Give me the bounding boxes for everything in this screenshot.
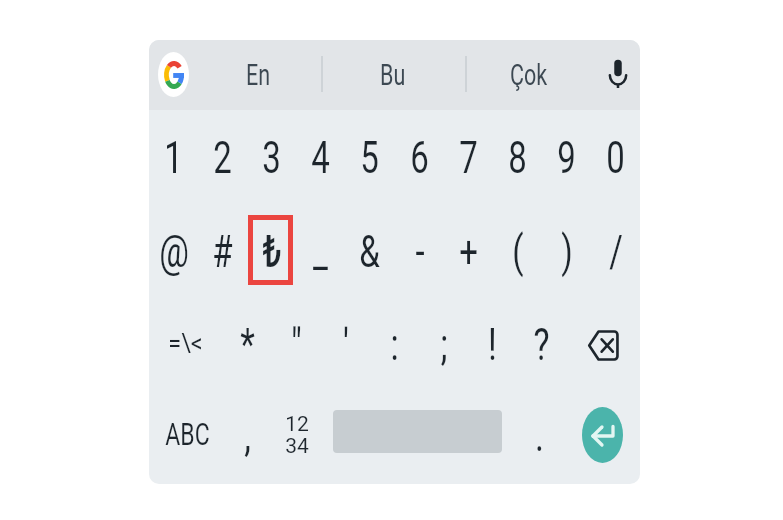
button[interactable]: * [223, 309, 272, 379]
staticText: , [244, 408, 251, 462]
staticText: En [246, 59, 271, 92]
staticText: 8 [508, 132, 527, 183]
staticText: 0 [606, 132, 625, 183]
button[interactable]: 9 [542, 122, 591, 192]
staticText: / [609, 226, 623, 277]
staticText: ! [488, 317, 497, 371]
staticText: 3 [262, 132, 281, 183]
button[interactable]: ( [493, 216, 542, 286]
staticText: Bu [380, 59, 406, 92]
button[interactable]: Google [158, 52, 189, 97]
button[interactable]: ? [517, 309, 566, 379]
button[interactable]: Bu [348, 52, 438, 98]
button[interactable]: , [223, 400, 272, 470]
button[interactable]: 0 [591, 122, 640, 192]
staticText: + [459, 226, 478, 277]
staticText: 2 [213, 132, 232, 183]
staticText: ) [561, 226, 573, 277]
staticText: - [415, 226, 425, 277]
staticText: ( [512, 226, 524, 277]
staticText: 12 34 [285, 412, 309, 458]
button[interactable]: 2 [198, 122, 247, 192]
staticText: 4 [311, 132, 330, 183]
staticText: ' [343, 317, 349, 371]
button[interactable]: ! [468, 309, 517, 379]
button[interactable]: 8 [493, 122, 542, 192]
button[interactable]: " [272, 309, 321, 379]
button[interactable]: ' [321, 309, 370, 379]
button[interactable]: 1 [149, 122, 198, 192]
button[interactable]: 4 [296, 122, 345, 192]
button[interactable]: . [515, 400, 564, 470]
staticText: ? [533, 317, 550, 371]
button[interactable]: # [198, 216, 247, 286]
button[interactable]: ₺ [247, 216, 296, 286]
button[interactable]: - [395, 216, 444, 286]
staticText: 1 [164, 132, 183, 183]
staticText: @ [159, 226, 189, 277]
staticText: # [212, 226, 233, 277]
staticText: 5 [360, 132, 379, 183]
button[interactable]: ; [419, 309, 468, 379]
button[interactable]: 3 [247, 122, 296, 192]
staticText: ; [440, 317, 448, 371]
button[interactable]: _ [296, 216, 345, 286]
staticText: =\< [168, 329, 203, 359]
staticText: " [291, 317, 302, 371]
button[interactable]: & [345, 216, 394, 286]
button[interactable]: 12 34 [272, 400, 321, 470]
button[interactable]: 7 [444, 122, 493, 192]
button[interactable]: ) [542, 216, 591, 286]
button[interactable]: En [213, 52, 303, 98]
button[interactable]: =\< [149, 309, 222, 379]
staticText: ₺ [262, 226, 282, 277]
button[interactable]: ABC [151, 400, 224, 470]
staticText: & [359, 226, 380, 277]
button[interactable]: + [444, 216, 493, 286]
staticText: * [240, 317, 255, 371]
staticText: : [390, 317, 399, 371]
button[interactable]: @ [149, 216, 198, 286]
button[interactable]: Voice input [598, 52, 638, 94]
button[interactable]: Enter [582, 407, 623, 463]
button[interactable]: Çok [484, 52, 574, 98]
staticText: 6 [410, 132, 429, 183]
staticText: ABC [165, 417, 210, 453]
button[interactable]: 5 [345, 122, 394, 192]
button[interactable]: : [370, 309, 419, 379]
staticText: _ [313, 226, 328, 277]
button[interactable]: Backspace [584, 324, 622, 366]
staticText: Çok [510, 59, 548, 92]
staticText: 9 [557, 132, 576, 183]
button[interactable]: 6 [395, 122, 444, 192]
staticText: . [535, 408, 544, 462]
staticText: 7 [459, 132, 478, 183]
button[interactable]: / [591, 216, 640, 286]
